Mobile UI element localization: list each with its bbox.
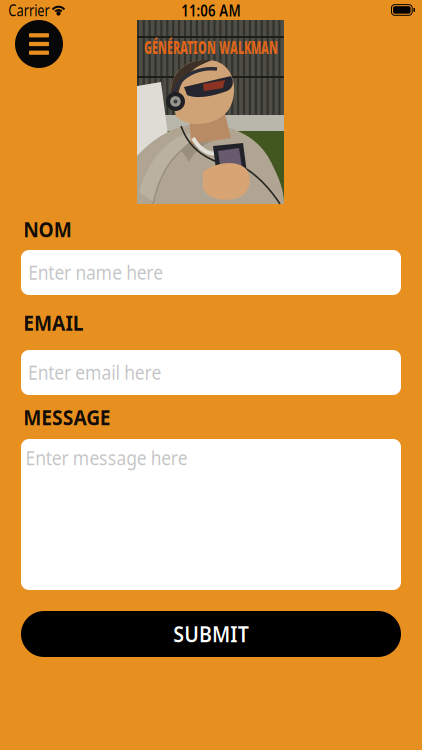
button[interactable]: Enter name here	[21, 250, 401, 295]
button[interactable]: Menu	[15, 20, 63, 68]
staticText: Carrier	[1, 0, 57, 21]
staticText: 11:06 AM	[172, 0, 250, 21]
staticText: NOM	[20, 215, 74, 243]
staticText: EMAIL	[20, 308, 87, 337]
button[interactable]: Enter email here	[21, 350, 401, 395]
staticText: SUBMIT	[170, 620, 252, 648]
staticText: MESSAGE	[18, 403, 115, 431]
staticText: Enter message here	[14, 444, 199, 471]
staticText: Enter email here	[18, 359, 170, 385]
staticText: Enter name here	[18, 259, 172, 285]
staticText: GÉNÉRATION WALKMAN	[144, 40, 278, 54]
button[interactable]: SUBMIT	[21, 611, 401, 657]
button[interactable]: Enter message here	[21, 439, 401, 590]
